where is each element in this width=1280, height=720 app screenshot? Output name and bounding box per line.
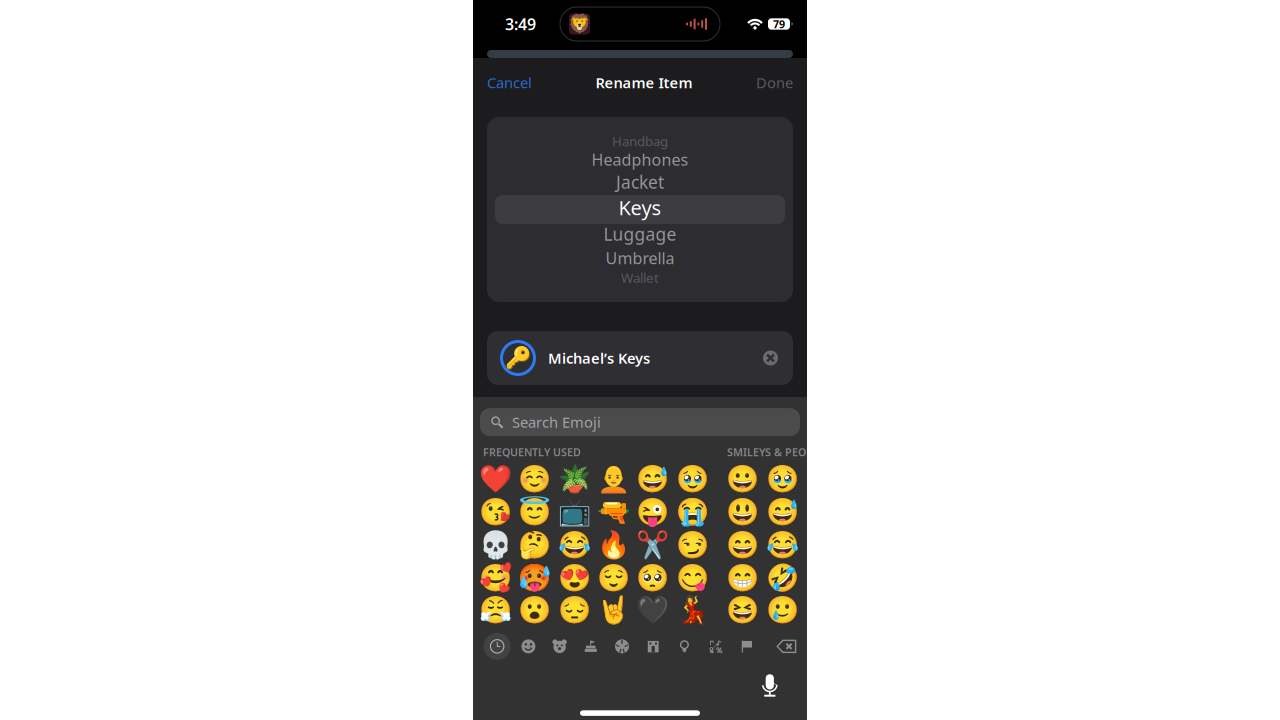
button[interactable]: Emoji: [515, 563, 554, 591]
staticText: 🤔: [518, 529, 551, 560]
staticText: 🤣: [765, 562, 798, 593]
staticText: Wallet: [621, 269, 659, 286]
button[interactable]: Emoji: [633, 498, 672, 526]
staticText: Headphones: [591, 149, 688, 170]
button[interactable]: 🔑: [487, 331, 793, 385]
staticText: ✂️: [636, 529, 669, 560]
button[interactable]: Activity: [606, 631, 638, 661]
button[interactable]: Food and drink: [575, 631, 606, 661]
button[interactable]: Animals and nature: [544, 631, 575, 661]
button[interactable]: Emoji: [762, 596, 802, 624]
staticText: 😅: [636, 464, 669, 494]
button[interactable]: Delete: [770, 631, 802, 661]
button[interactable]: Emoji: [633, 531, 672, 559]
staticText: Luggage: [603, 222, 676, 245]
staticText: Umbrella: [605, 247, 674, 269]
button[interactable]: Emoji: [672, 596, 712, 624]
button[interactable]: Emoji: [515, 596, 554, 624]
staticText: 🥹: [765, 464, 798, 494]
button[interactable]: Emoji: [762, 465, 802, 493]
button[interactable]: Search Emoji: [480, 408, 800, 436]
button[interactable]: Emoji: [633, 465, 672, 493]
button[interactable]: Emoji: [554, 596, 594, 624]
button[interactable]: Emoji: [515, 498, 554, 526]
staticText: Search Emoji: [512, 412, 601, 432]
button[interactable]: Emoji: [554, 563, 594, 591]
staticText: 😍: [557, 562, 590, 593]
button[interactable]: Flags: [731, 631, 762, 661]
button[interactable]: Smileys and people: [513, 631, 544, 661]
staticText: ❤️: [479, 464, 512, 494]
staticText: Michael’s Keys: [548, 348, 650, 368]
button[interactable]: Emoji: [672, 531, 712, 559]
button[interactable]: Cancel: [473, 61, 532, 103]
button[interactable]: Emoji: [723, 498, 762, 526]
staticText: 💃: [676, 595, 709, 626]
button[interactable]: Dictate: [755, 670, 785, 700]
button[interactable]: Emoji: [633, 563, 672, 591]
staticText: 😜: [636, 497, 669, 527]
button[interactable]: Emoji: [554, 498, 594, 526]
button[interactable]: Symbols: [700, 631, 731, 661]
staticText: 🥲: [765, 595, 798, 626]
staticText: 😁: [726, 562, 759, 593]
staticText: 🥹: [676, 464, 709, 494]
button[interactable]: Emoji: [594, 563, 633, 591]
button[interactable]: Emoji: [723, 596, 762, 624]
staticText: 🥵: [518, 562, 551, 593]
button[interactable]: Emoji: [672, 465, 712, 493]
button[interactable]: Emoji: [672, 498, 712, 526]
staticText: 79: [773, 17, 785, 31]
staticText: FREQUENTLY USED: [483, 445, 581, 459]
button[interactable]: Emoji: [762, 498, 802, 526]
staticText: 😌: [597, 562, 630, 593]
staticText: 🪴: [557, 464, 590, 494]
staticText: 😅: [765, 497, 798, 527]
button[interactable]: Emoji: [554, 465, 594, 493]
staticText: 😏: [676, 529, 709, 560]
staticText: Handbag: [612, 132, 668, 150]
button[interactable]: Emoji: [475, 498, 515, 526]
button[interactable]: Objects: [669, 631, 700, 661]
staticText: 😮: [518, 595, 551, 626]
button[interactable]: Emoji: [594, 498, 633, 526]
staticText: Cancel: [487, 73, 532, 92]
staticText: 😭: [676, 497, 709, 527]
button[interactable]: Emoji: [515, 465, 554, 493]
button[interactable]: Emoji: [475, 596, 515, 624]
staticText: 3:49: [505, 13, 536, 35]
button[interactable]: Travel and places: [638, 631, 669, 661]
button[interactable]: Emoji: [515, 531, 554, 559]
staticText: Jacket: [616, 170, 664, 193]
staticText: 😔: [557, 595, 590, 626]
staticText: Rename Item: [595, 73, 692, 92]
button[interactable]: Emoji: [594, 531, 633, 559]
button[interactable]: Frequently used: [482, 631, 513, 661]
staticText: 😄: [726, 529, 759, 560]
button[interactable]: Emoji: [723, 531, 762, 559]
staticText: 😤: [479, 595, 512, 626]
staticText: 💀: [479, 529, 512, 560]
staticText: 😘: [479, 497, 512, 527]
button[interactable]: Emoji: [762, 563, 802, 591]
button[interactable]: Emoji: [475, 465, 515, 493]
button[interactable]: Done: [756, 61, 807, 103]
button[interactable]: Emoji: [723, 465, 762, 493]
button[interactable]: Emoji: [475, 563, 515, 591]
staticText: Keys: [618, 194, 661, 221]
staticText: 🦁: [568, 13, 591, 35]
button[interactable]: Emoji: [633, 596, 672, 624]
staticText: 🖤: [636, 595, 669, 626]
button[interactable]: Emoji: [475, 531, 515, 559]
staticText: 😂: [557, 529, 590, 560]
button[interactable]: Emoji: [554, 531, 594, 559]
button[interactable]: Emoji: [594, 596, 633, 624]
staticText: 📺: [557, 497, 590, 527]
button[interactable]: Emoji: [672, 563, 712, 591]
button[interactable]: Emoji: [762, 531, 802, 559]
button[interactable]: Emoji: [594, 465, 633, 493]
staticText: 😇: [518, 497, 551, 527]
staticText: 🧑‍🦲: [597, 464, 630, 494]
staticText: 🥺: [636, 562, 669, 593]
button[interactable]: Emoji: [723, 563, 762, 591]
